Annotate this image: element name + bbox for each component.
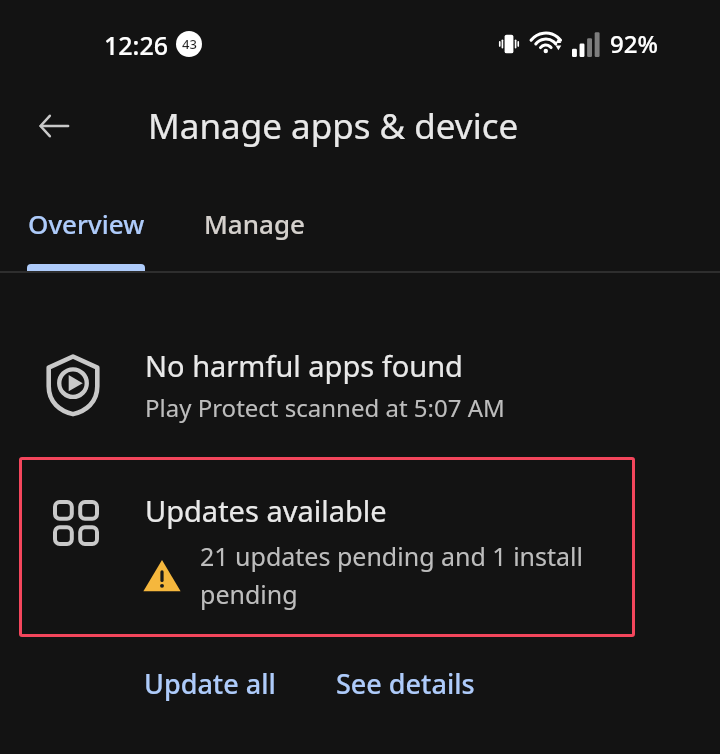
- staticText: Overview: [28, 206, 145, 241]
- staticText: Update all: [144, 665, 276, 702]
- staticText: 43: [182, 35, 197, 53]
- button[interactable]: Back: [26, 98, 82, 154]
- button[interactable]: No harmful apps found: [0, 320, 720, 450]
- staticText: Manage: [204, 206, 305, 241]
- staticText: Updates available: [145, 491, 387, 530]
- staticText: Play Protect scanned at 5:07 AM: [145, 391, 505, 424]
- button[interactable]: Manage: [172, 186, 336, 272]
- button[interactable]: See details: [318, 655, 493, 712]
- staticText: See details: [336, 665, 475, 702]
- button[interactable]: Updates available: [19, 457, 635, 637]
- staticText: 12:26: [104, 28, 169, 62]
- staticText: Manage apps & device: [148, 102, 519, 150]
- staticText: No harmful apps found: [145, 346, 463, 385]
- staticText: 92%: [610, 27, 658, 60]
- button[interactable]: Update all: [126, 655, 294, 712]
- staticText: 21 updates pending and 1 install pending: [200, 539, 620, 611]
- button[interactable]: Overview: [0, 186, 172, 272]
